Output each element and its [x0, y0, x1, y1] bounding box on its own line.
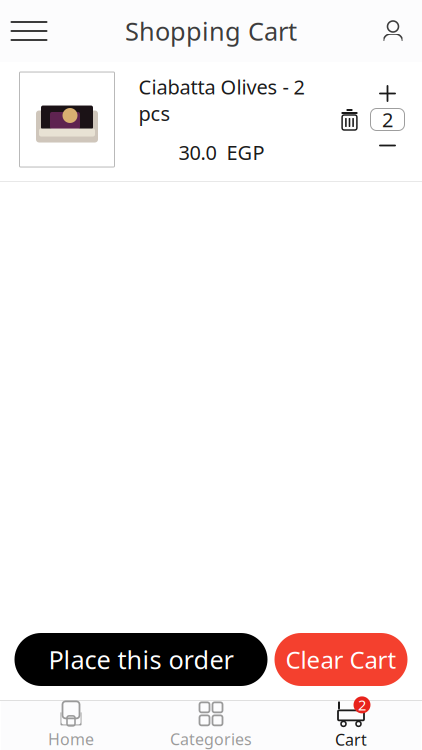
button[interactable]: 2	[281, 701, 421, 750]
staticText: 2	[358, 695, 366, 715]
staticText: Categories	[170, 728, 252, 750]
staticText: 2	[382, 106, 393, 133]
staticText: Ciabatta Olives - 2 pcs	[138, 73, 304, 127]
button[interactable]: Remove item	[336, 104, 362, 135]
staticText: Clear Cart	[285, 644, 396, 675]
staticText: Shopping Cart	[125, 14, 297, 48]
button[interactable]: Account	[364, 0, 422, 62]
staticText: Cart	[335, 729, 367, 750]
staticText: Home	[48, 728, 94, 750]
button[interactable]: Increase quantity	[375, 82, 399, 104]
button[interactable]: Categories	[141, 701, 281, 750]
button[interactable]: Decrease quantity	[375, 134, 399, 156]
button[interactable]: Place this order	[14, 633, 267, 686]
button[interactable]: Home	[1, 701, 141, 750]
button[interactable]: Clear Cart	[274, 633, 407, 686]
button[interactable]: Quantity 2	[370, 108, 404, 130]
staticText: 30.0 EGP	[178, 139, 264, 165]
staticText: Place this order	[48, 643, 233, 676]
button[interactable]: Menu	[0, 0, 58, 62]
